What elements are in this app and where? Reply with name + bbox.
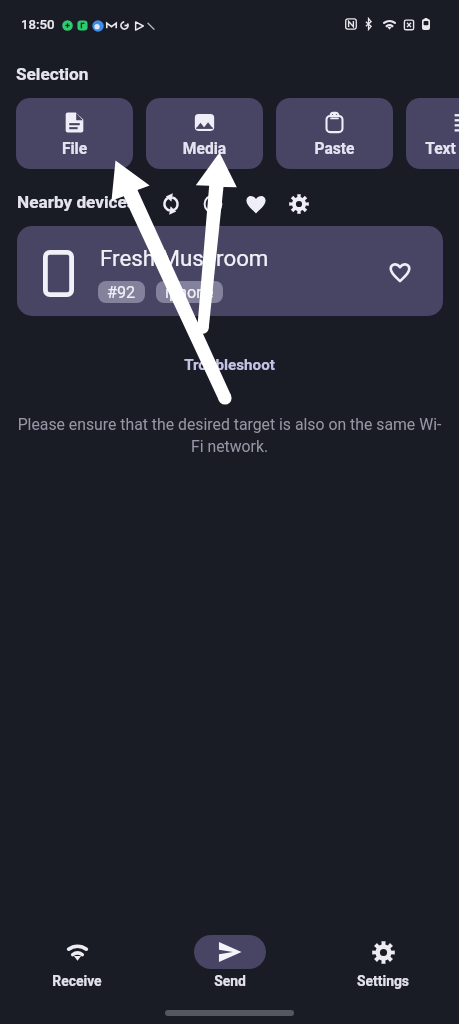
button[interactable]: Favourites [239,187,273,221]
staticText: iphone [165,283,214,302]
staticText: File [16,140,133,158]
button[interactable]: Receive [17,928,137,994]
button[interactable]: Settings [323,928,443,994]
button[interactable]: Settings [282,187,316,221]
staticText: Send [170,973,290,989]
button[interactable]: Favourite [378,250,422,294]
staticText: Selection [16,64,89,84]
button[interactable]: Fresh Mushroom [17,226,443,316]
button[interactable]: Send [170,928,290,994]
button[interactable]: Media [146,98,263,169]
staticText: Media [146,140,263,158]
button[interactable]: Paste [276,98,393,169]
button[interactable]: Troubleshoot [0,356,459,374]
button[interactable]: Refresh [154,187,188,221]
button[interactable]: Recent [196,187,230,221]
staticText: Text [406,140,459,158]
staticText: Paste [276,140,393,158]
staticText: Fresh Mushroom [100,245,269,271]
button[interactable]: Text [406,98,459,169]
staticText: Settings [323,973,443,989]
staticText: Please ensure that the desired target is… [16,415,443,456]
staticText: #92 [107,283,136,302]
staticText: Receive [17,973,137,989]
staticText: 18:50 [21,17,55,32]
staticText: Nearby devices [17,192,136,212]
button[interactable]: File [16,98,133,169]
